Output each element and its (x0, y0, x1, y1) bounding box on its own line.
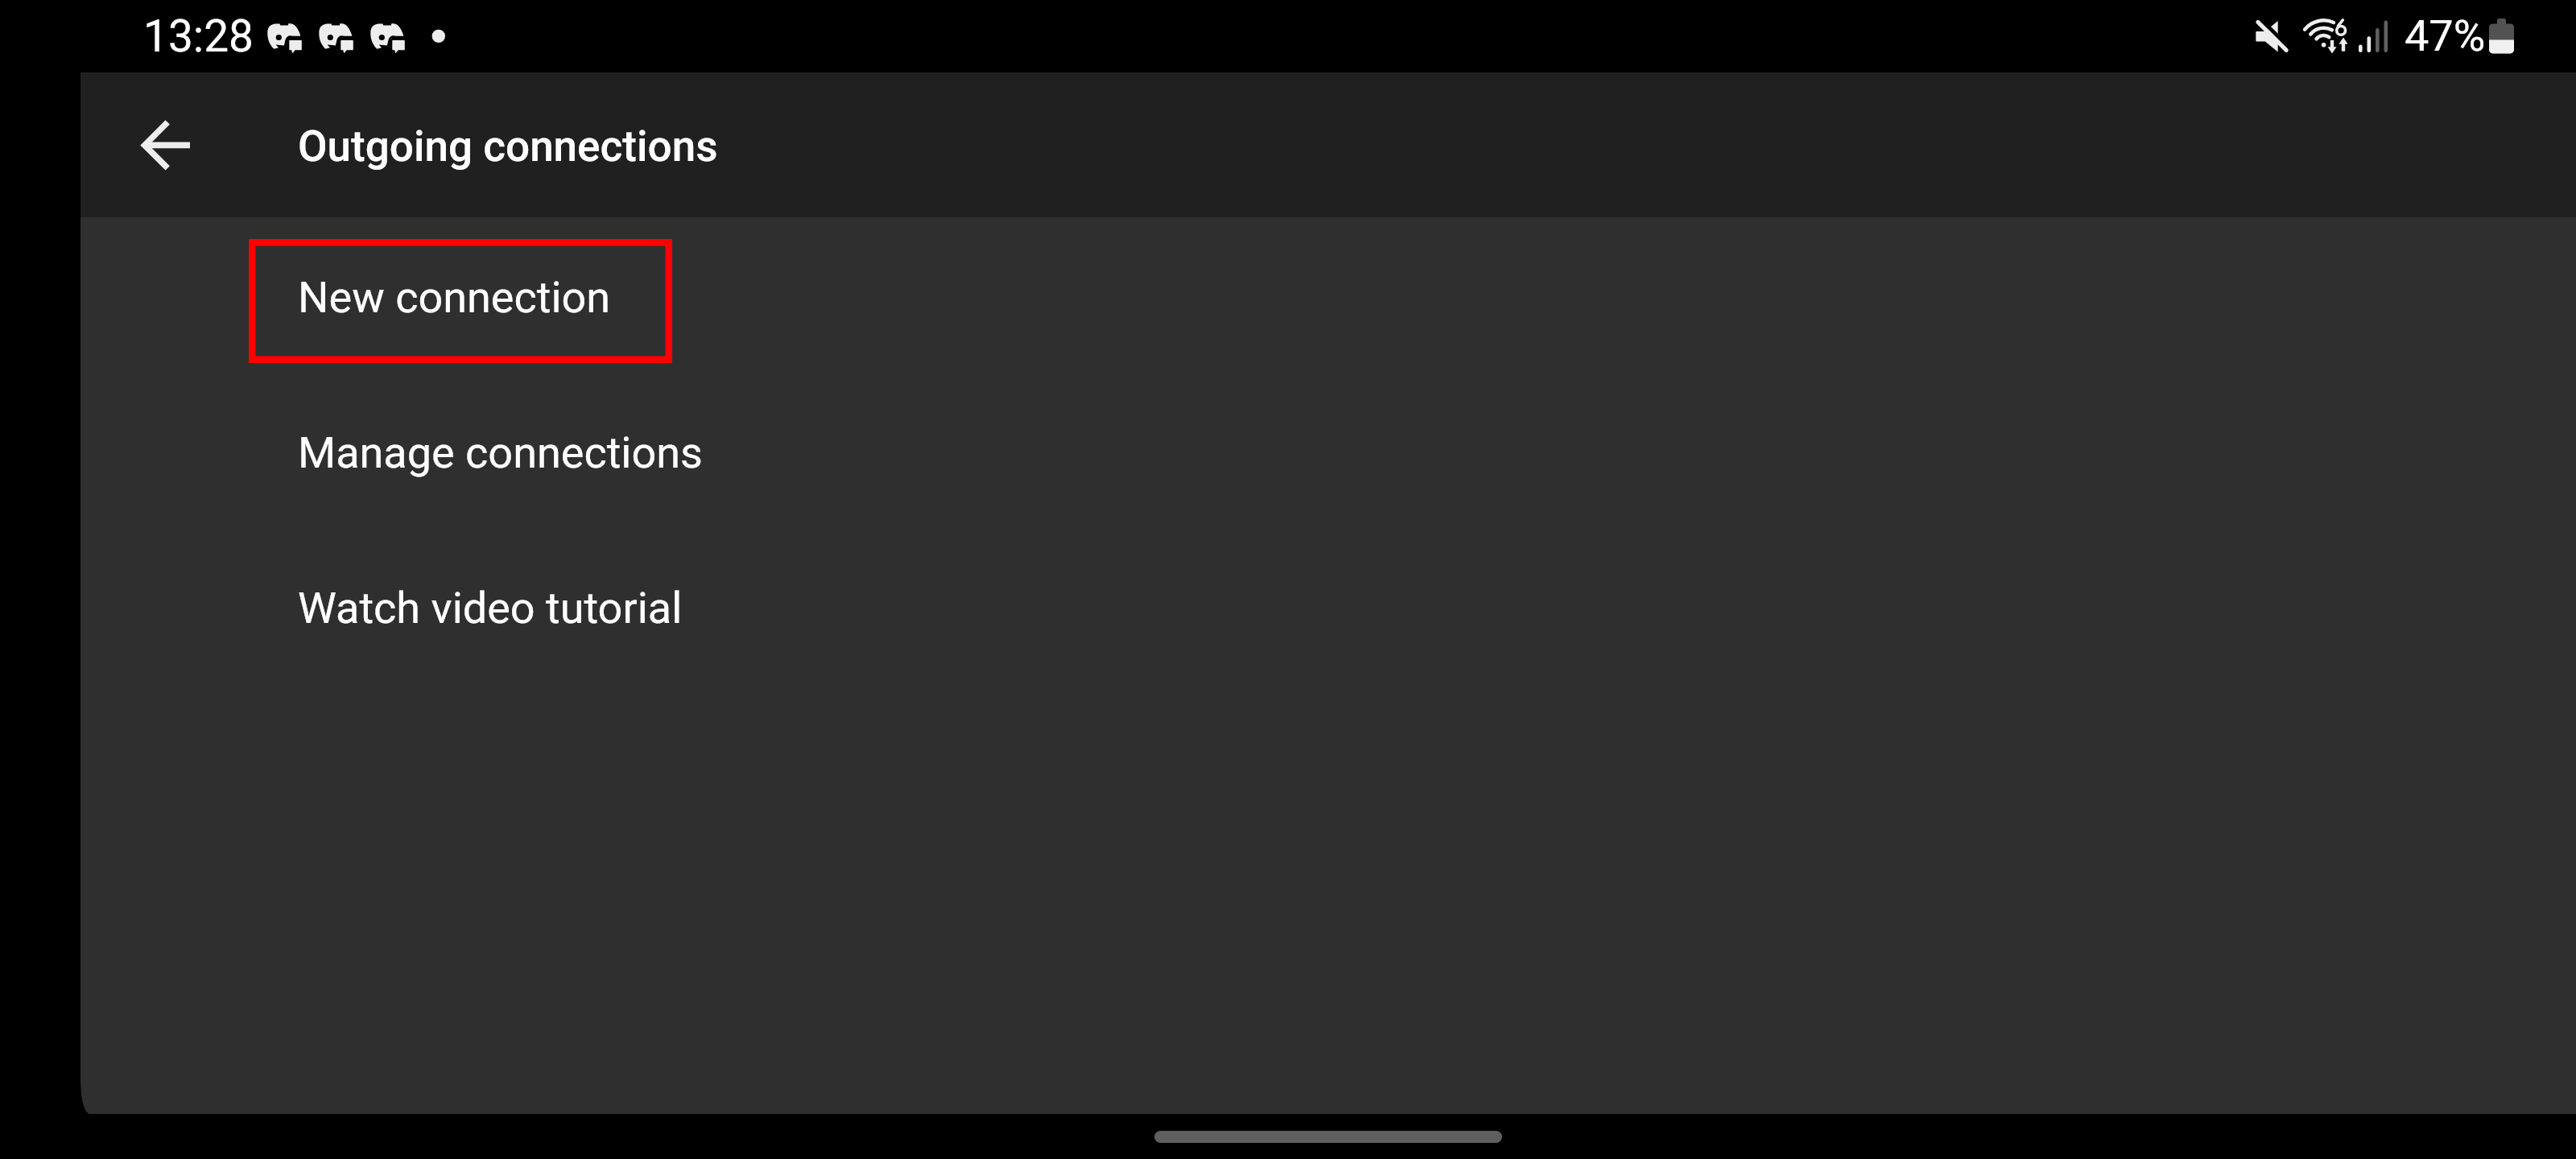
staticText: New connection (298, 272, 611, 323)
staticText: 13:28 (143, 10, 254, 62)
button[interactable]: Manage connections (249, 394, 672, 518)
button[interactable]: New connection (249, 239, 672, 363)
staticText: 47% (2405, 10, 2486, 61)
staticText: Watch video tutorial (298, 583, 683, 633)
staticText: Manage connections (298, 427, 703, 478)
staticText: Outgoing connections (298, 122, 718, 171)
button[interactable]: Watch video tutorial (249, 550, 672, 674)
button[interactable]: Back (116, 96, 214, 194)
